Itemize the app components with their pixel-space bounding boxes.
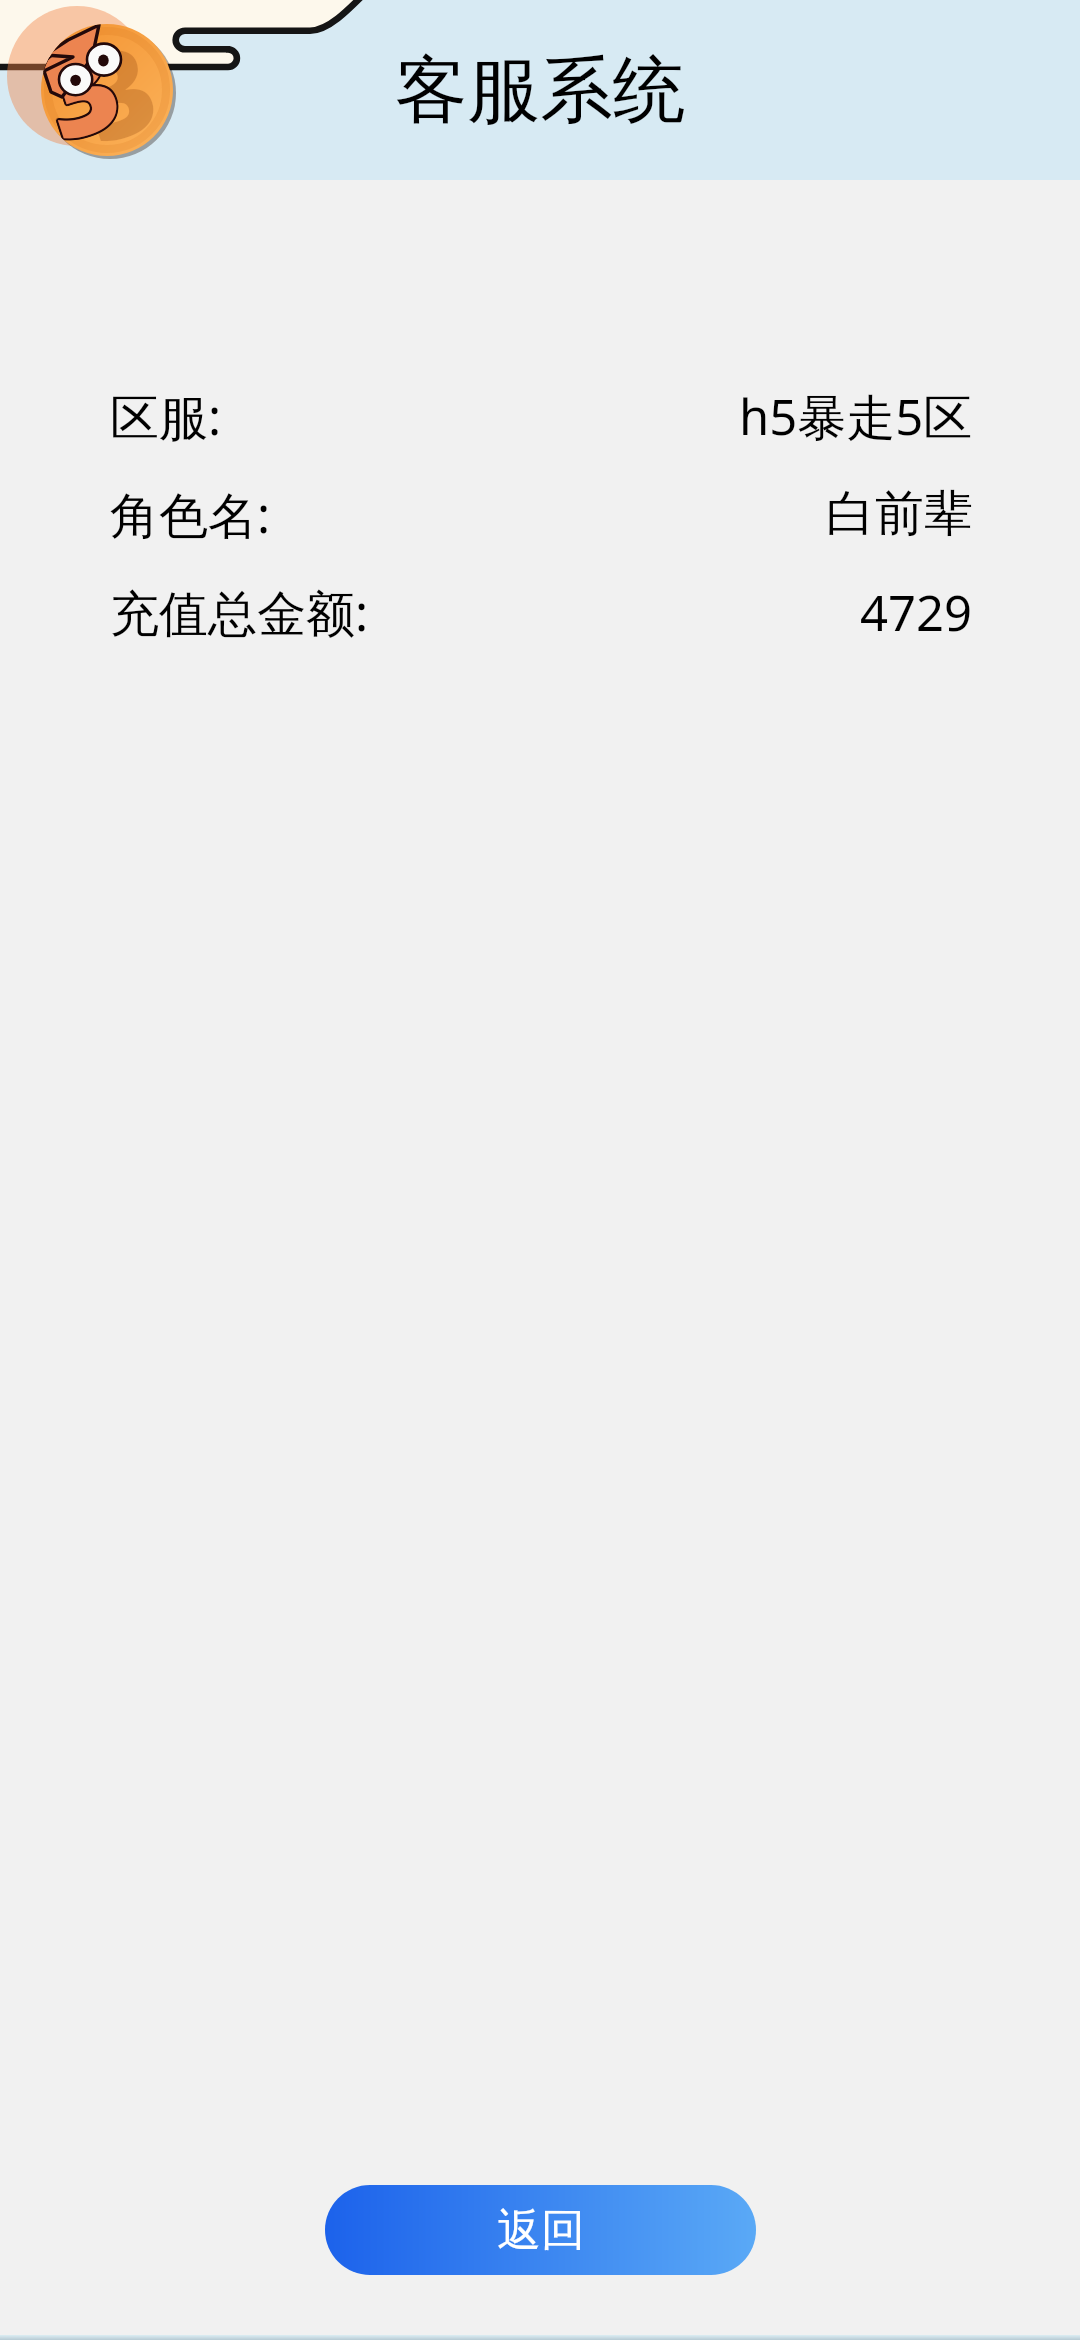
staticText: h5暴走5区 [739, 383, 973, 450]
staticText: 充值总金额: [110, 579, 369, 646]
staticText: 区服: [110, 383, 222, 450]
button[interactable]: 返回 [325, 2185, 756, 2275]
other: 客服系统 logo [0, 0, 1080, 180]
staticText: 角色名: [110, 481, 271, 548]
staticText: 返回 [497, 2203, 585, 2258]
staticText: 客服系统 [395, 45, 685, 136]
staticText: 白前辈 [826, 483, 973, 545]
staticText: 4729 [860, 579, 973, 646]
